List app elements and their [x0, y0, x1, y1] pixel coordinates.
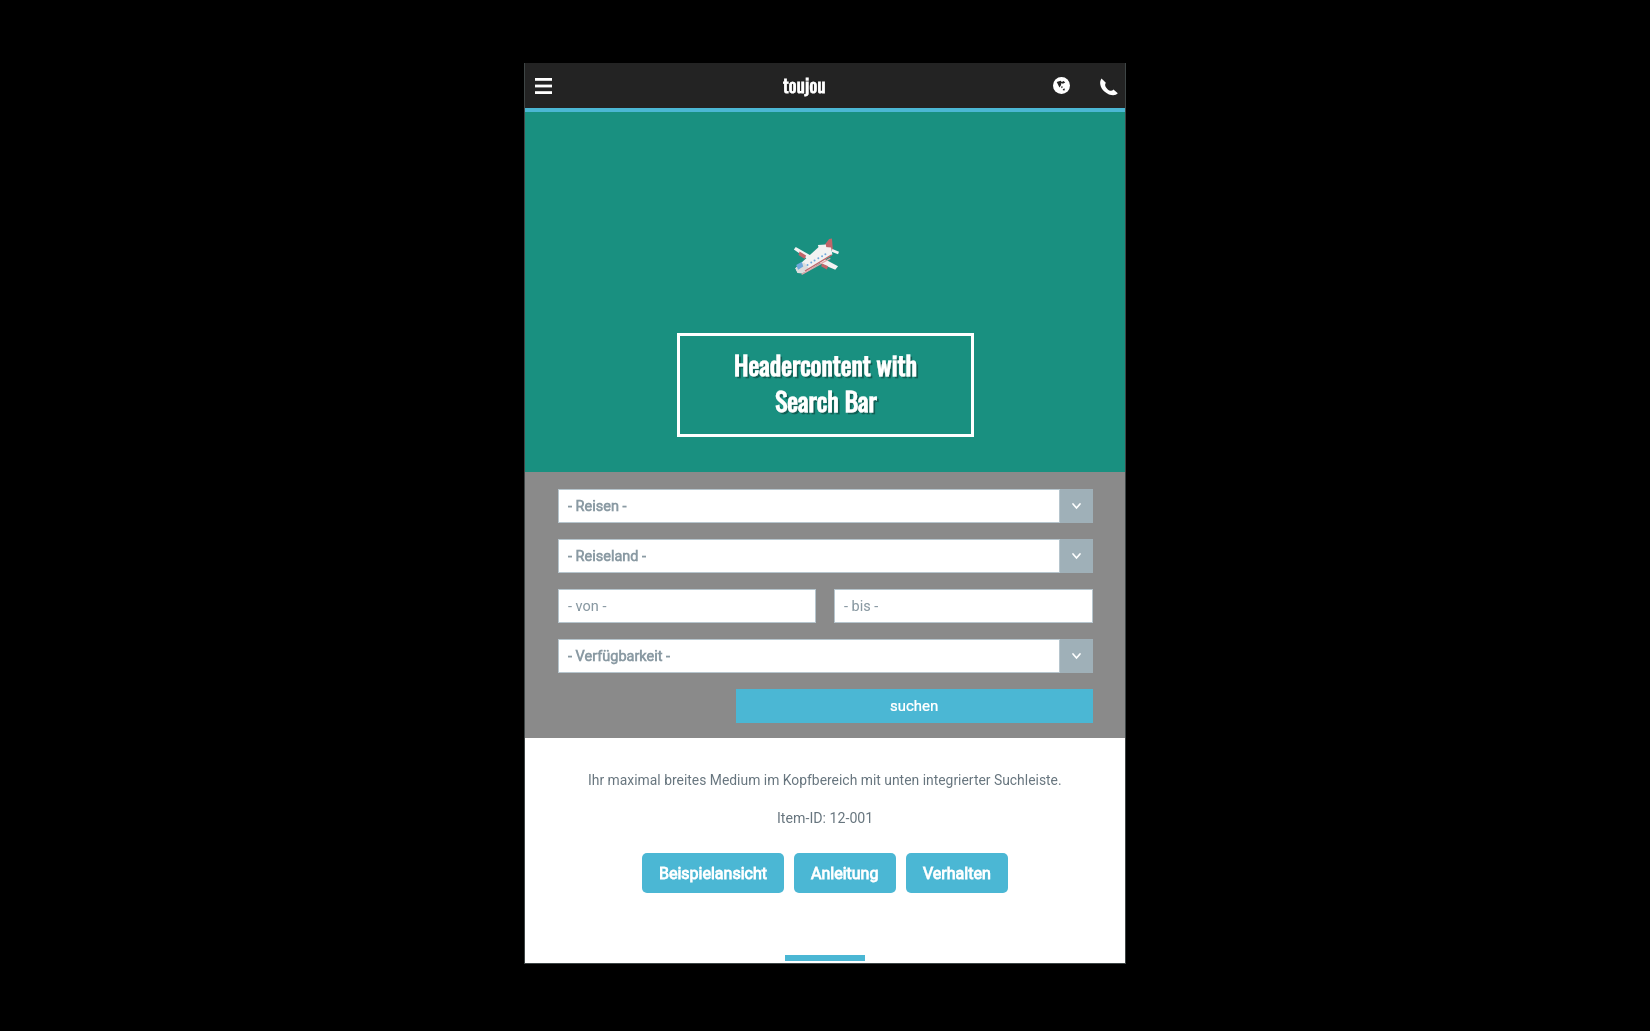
staticText: Search Bar	[777, 383, 879, 421]
staticText: Ihr maximal breites Medium im Kopfbereic…	[588, 772, 1062, 788]
staticText: Verhalten	[923, 864, 991, 883]
button[interactable]: Beispielansicht	[642, 853, 784, 893]
staticText: - Reisen -	[568, 498, 627, 515]
staticText: Search Bar	[775, 381, 877, 419]
button[interactable]: Language	[1031, 63, 1092, 108]
staticText: toujou	[783, 72, 826, 99]
button[interactable]: Verhalten	[906, 853, 1008, 893]
button[interactable]: suchen	[736, 689, 1093, 723]
button[interactable]: - Reiseland -	[558, 539, 1093, 573]
staticText: Headercontent with	[736, 347, 919, 385]
button[interactable]: Menu	[522, 64, 565, 107]
button[interactable]: - Reisen -	[558, 489, 1093, 523]
staticText: Item-ID: 12-001	[777, 810, 874, 827]
staticText: Headercontent with	[734, 345, 917, 383]
button[interactable]: Call	[1092, 70, 1124, 102]
staticText: Beispielansicht	[659, 864, 767, 883]
staticText: - Reiseland -	[568, 548, 647, 565]
button[interactable]: - von -	[558, 589, 816, 623]
button[interactable]: - Verfügbarkeit -	[558, 639, 1093, 673]
staticText: Anleitung	[811, 864, 879, 883]
staticText: - Verfügbarkeit -	[568, 648, 671, 665]
staticText: - von -	[568, 598, 607, 615]
staticText: suchen	[890, 697, 939, 715]
staticText: - bis -	[844, 598, 879, 615]
button[interactable]: Anleitung	[794, 853, 896, 893]
button[interactable]: - bis -	[834, 589, 1093, 623]
